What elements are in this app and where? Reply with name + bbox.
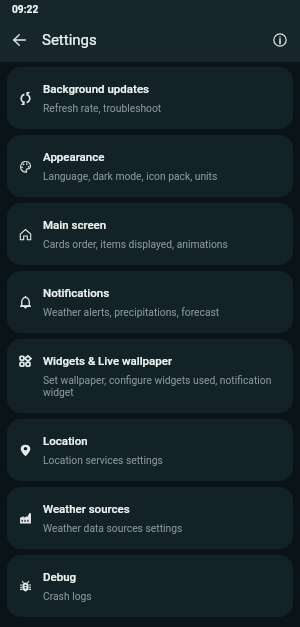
staticText: Refresh rate, troubleshoot: [43, 102, 162, 114]
staticText: 09:22: [12, 4, 39, 16]
staticText: Weather sources: [43, 502, 130, 515]
button[interactable]: Location: [7, 419, 293, 481]
staticText: Language, dark mode, icon pack, units: [43, 170, 218, 182]
button[interactable]: Appearance: [7, 135, 293, 197]
button[interactable]: Debug: [7, 555, 293, 617]
staticText: Crash logs: [43, 590, 92, 602]
staticText: Settings: [42, 31, 97, 49]
button[interactable]: Weather sources: [7, 487, 293, 549]
staticText: Appearance: [43, 150, 105, 163]
staticText: Location services settings: [43, 454, 163, 466]
staticText: Cards order, items displayed, animations: [43, 238, 228, 250]
button[interactable]: Back: [0, 27, 39, 53]
staticText: Weather alerts, precipitations, forecast: [43, 306, 220, 318]
button[interactable]: Widgets & Live wallpaper: [7, 339, 293, 413]
staticText: Set wallpaper, configure widgets used, n…: [43, 374, 279, 398]
button[interactable]: Main screen: [7, 203, 293, 265]
staticText: Widgets & Live wallpaper: [43, 354, 172, 367]
staticText: Main screen: [43, 218, 107, 231]
button[interactable]: About: [264, 27, 296, 53]
button[interactable]: Notifications: [7, 271, 293, 333]
staticText: Notifications: [43, 286, 110, 299]
button[interactable]: Background updates: [7, 67, 293, 129]
staticText: Debug: [43, 570, 77, 583]
staticText: Location: [43, 434, 88, 447]
staticText: Background updates: [43, 82, 149, 95]
staticText: Weather data sources settings: [43, 522, 183, 534]
